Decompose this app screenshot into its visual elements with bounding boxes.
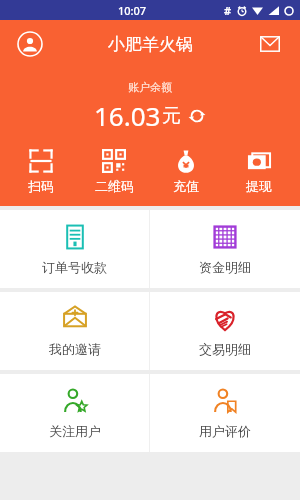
staticText: 账户余额 [128,80,172,94]
staticText: 元 [162,104,181,128]
button[interactable]: Messages [256,30,284,58]
staticText: 关注用户 [49,423,101,439]
staticText: 用户评价 [199,423,251,439]
staticText: # [224,3,232,18]
staticText: 扫码 [28,178,54,194]
staticText: 二维码 [95,178,134,194]
staticText: 充值 [173,178,199,194]
button[interactable]: 用户评价 [150,374,300,452]
button[interactable]: 我的邀请 [0,292,149,370]
staticText: 提现 [246,178,272,194]
staticText: 16.03 [94,98,161,133]
button[interactable]: 关注用户 [0,374,149,452]
button[interactable]: Profile [16,30,44,58]
staticText: 10:07 [118,3,147,18]
staticText: 小肥羊火锅 [108,34,193,55]
button[interactable]: 扫码 [10,147,72,196]
button[interactable]: 交易明细 [150,292,300,370]
button[interactable]: Refresh balance [187,106,207,126]
staticText: 交易明细 [199,341,251,357]
button[interactable]: 资金明细 [150,210,300,288]
staticText: 资金明细 [199,259,251,275]
staticText: 我的邀请 [49,341,101,357]
button[interactable]: 二维码 [83,147,145,196]
button[interactable]: 提现 [228,147,290,196]
button[interactable]: 充值 [155,147,217,196]
staticText: 订单号收款 [42,259,107,275]
button[interactable]: 订单号收款 [0,210,149,288]
